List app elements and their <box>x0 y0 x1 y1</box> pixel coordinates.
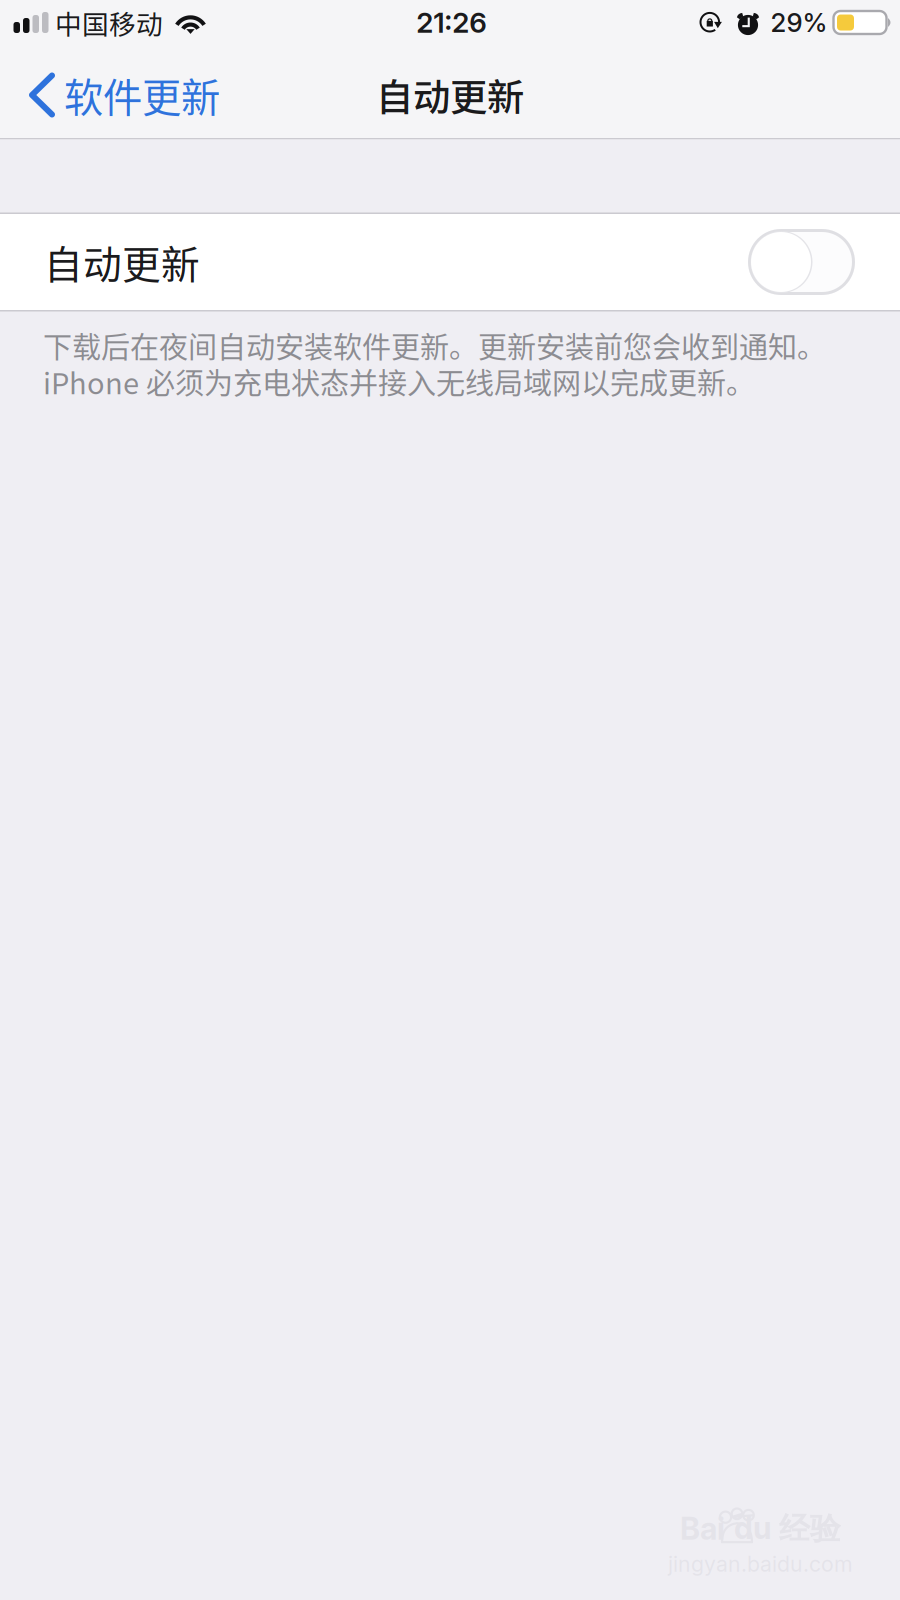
staticText: 软件更新 <box>64 66 220 123</box>
staticText: jingyan.baidu.com <box>668 1551 853 1577</box>
staticText: du 经验 <box>734 1509 841 1548</box>
staticText: 中国移动 <box>55 3 163 42</box>
button[interactable]: 自动更新 <box>748 229 900 295</box>
staticText: 29% <box>770 7 827 38</box>
staticText: 自动更新 <box>376 68 524 122</box>
button[interactable]: 自动更新 <box>0 214 900 310</box>
staticText: Bai <box>680 1510 725 1547</box>
button[interactable]: 软件更新 <box>0 52 236 138</box>
staticText: iPhone 必须为充电状态并接入无线局域网以完成更新。 <box>43 361 755 403</box>
staticText: 自动更新 <box>44 234 200 290</box>
staticText: 21:26 <box>416 6 487 39</box>
staticText: 下载后在夜间自动安装软件更新。更新安装前您会收到通知。 <box>43 324 826 367</box>
